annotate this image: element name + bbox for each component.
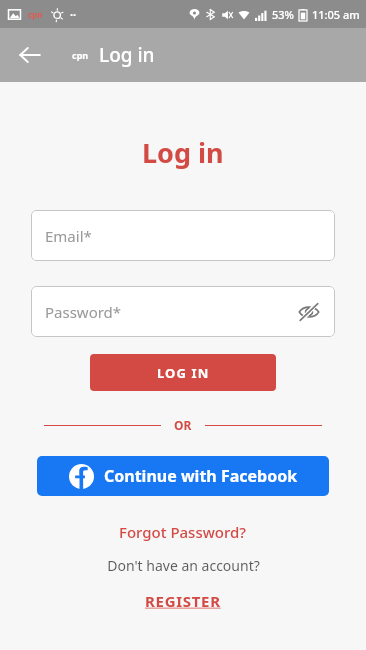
staticText: 53% <box>272 7 294 22</box>
staticText: Password* <box>45 302 122 322</box>
button[interactable]: Back <box>8 33 52 77</box>
staticText: Forgot Password? <box>119 522 247 542</box>
staticText: LOG IN <box>157 364 210 382</box>
button[interactable]: Forgot Password? <box>111 519 255 545</box>
button[interactable]: REGISTER <box>137 589 229 613</box>
button[interactable]: Continue with Facebook <box>37 456 329 496</box>
staticText: REGISTER <box>145 591 221 611</box>
staticText: OR <box>174 417 192 433</box>
staticText: cpn <box>72 49 89 61</box>
button[interactable]: LOG IN <box>90 354 276 391</box>
staticText: Log in <box>142 134 224 171</box>
staticText: cpn <box>28 9 43 20</box>
staticText: Continue with Facebook <box>104 465 298 487</box>
staticText: ·· <box>70 7 77 22</box>
staticText: Don't have an account? <box>107 556 260 575</box>
staticText: 11:05 am <box>312 7 360 22</box>
button[interactable]: Email* <box>31 210 335 261</box>
button[interactable]: Password* <box>31 286 335 337</box>
button[interactable]: Show password <box>291 294 327 330</box>
staticText: Email* <box>45 226 92 246</box>
staticText: Log in <box>99 42 155 68</box>
